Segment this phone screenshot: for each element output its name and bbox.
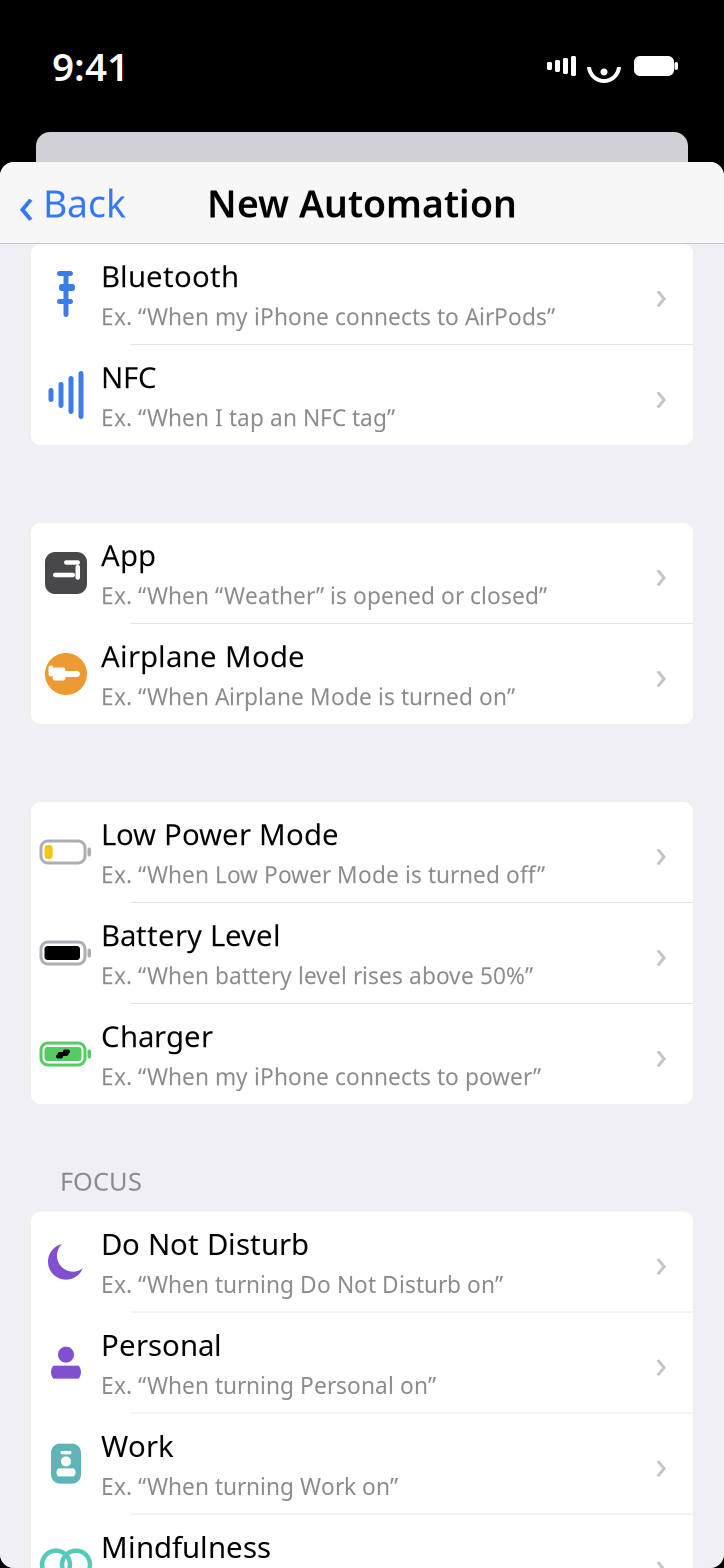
button[interactable]: NFC xyxy=(31,345,693,445)
staticText: Work xyxy=(101,1426,174,1465)
staticText: Ex. “When turning Work on” xyxy=(101,1471,398,1501)
staticText: › xyxy=(655,1336,667,1389)
staticText: Do Not Disturb xyxy=(101,1224,309,1263)
button[interactable]: App xyxy=(31,523,693,624)
staticText: Ex. “When I tap an NFC tag” xyxy=(101,402,395,432)
button[interactable]: Charger xyxy=(31,1004,693,1104)
staticText: Ex. “When Airplane Mode is turned on” xyxy=(101,681,515,711)
staticText: › xyxy=(655,825,667,878)
staticText: Mindfulness xyxy=(101,1527,271,1566)
button[interactable]: Battery Level xyxy=(31,903,693,1004)
staticText: Bluetooth xyxy=(101,256,239,295)
button[interactable]: Bluetooth xyxy=(31,244,693,345)
button[interactable]: Work xyxy=(31,1414,693,1515)
staticText: Low Power Mode xyxy=(101,814,339,853)
staticText: › xyxy=(655,267,667,320)
staticText: › xyxy=(655,926,667,979)
staticText: Personal xyxy=(101,1325,222,1364)
button[interactable]: Mindfulness xyxy=(31,1515,693,1568)
staticText: New Automation xyxy=(207,178,517,228)
staticText: FOCUS xyxy=(60,1164,142,1198)
staticText: App xyxy=(101,535,156,574)
staticText: › xyxy=(655,546,667,599)
button[interactable]: Do Not Disturb xyxy=(31,1212,693,1313)
staticText: Ex. “When turning Do Not Disturb on” xyxy=(101,1269,503,1299)
staticText: › xyxy=(655,1437,667,1490)
staticText: Ex. “When turning Personal on” xyxy=(101,1370,436,1400)
staticText: Ex. “When battery level rises above 50%” xyxy=(101,960,533,990)
staticText: Ex. “When my iPhone connects to power” xyxy=(101,1061,541,1091)
staticText: Ex. “When Low Power Mode is turned off” xyxy=(101,859,545,889)
staticText: › xyxy=(655,1538,667,1568)
staticText: › xyxy=(655,1027,667,1080)
staticText: › xyxy=(655,1235,667,1288)
staticText: Battery Level xyxy=(101,915,281,954)
staticText: Ex. “When “Weather” is opened or closed” xyxy=(101,580,547,610)
button[interactable]: ‹ xyxy=(0,160,126,246)
button[interactable]: Personal xyxy=(31,1313,693,1414)
staticText: NFC xyxy=(101,357,157,396)
staticText: Charger xyxy=(101,1016,213,1055)
button[interactable]: Low Power Mode xyxy=(31,802,693,903)
staticText: ‹ xyxy=(18,168,35,238)
button[interactable]: Airplane Mode xyxy=(31,624,693,724)
staticText: 9:41 xyxy=(52,40,129,92)
staticText: › xyxy=(655,368,667,421)
staticText: Back xyxy=(43,178,126,228)
staticText: Airplane Mode xyxy=(101,636,305,675)
staticText: › xyxy=(655,647,667,700)
staticText: Ex. “When my iPhone connects to AirPods” xyxy=(101,301,555,331)
